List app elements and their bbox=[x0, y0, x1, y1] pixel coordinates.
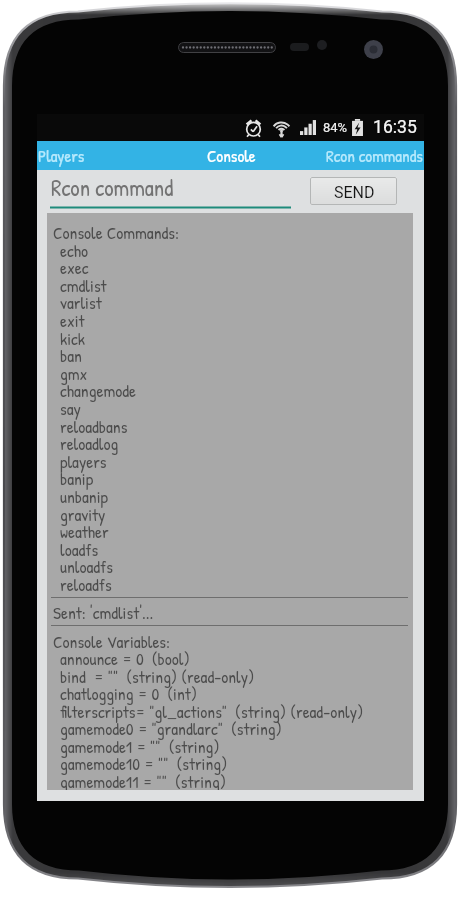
staticText: Rcon commands bbox=[326, 144, 423, 167]
staticText: Console Commands: bbox=[53, 221, 180, 245]
button[interactable]: Console bbox=[207, 141, 267, 170]
staticText: exec bbox=[60, 256, 89, 280]
staticText: Console Variables: bbox=[53, 630, 171, 654]
staticText: ban bbox=[60, 344, 82, 368]
staticText: gmx bbox=[60, 362, 88, 386]
staticText: gamemode1 = "" (string) bbox=[60, 735, 220, 759]
staticText: varlist bbox=[60, 291, 102, 315]
staticText: gamemode11 = "" (string) bbox=[60, 770, 226, 790]
staticText: announce = 0 (bool) bbox=[60, 647, 190, 671]
staticText: Players bbox=[38, 144, 85, 167]
staticText: reloadlog bbox=[60, 432, 119, 456]
staticText: cmdlist bbox=[60, 274, 107, 298]
staticText: echo bbox=[60, 239, 88, 263]
staticText: filterscripts= "gl_actions" (string) (re… bbox=[60, 700, 364, 724]
staticText: SEND bbox=[334, 183, 375, 202]
button[interactable]: Players bbox=[38, 141, 96, 170]
staticText: kick bbox=[60, 327, 86, 351]
staticText: bind = "" (string) (read-only) bbox=[60, 665, 255, 689]
staticText: unloadfs bbox=[60, 555, 113, 579]
staticText: gamemode10 = "" (string) bbox=[60, 752, 228, 776]
staticText: exit bbox=[60, 309, 85, 333]
button[interactable]: SEND bbox=[310, 177, 397, 205]
staticText: Rcon command bbox=[51, 172, 174, 203]
staticText: banip bbox=[60, 467, 94, 491]
staticText: unbanip bbox=[60, 485, 108, 509]
button[interactable]: Rcon commands bbox=[326, 141, 424, 170]
staticText: loadfs bbox=[60, 538, 99, 562]
staticText: 16:35 bbox=[373, 117, 417, 138]
staticText: reloadfs bbox=[60, 573, 112, 597]
staticText: gravity bbox=[60, 503, 106, 527]
staticText: gamemode0 = "grandlarc" (string) bbox=[60, 717, 282, 741]
staticText: reloadbans bbox=[60, 415, 128, 439]
staticText: changemode bbox=[60, 379, 136, 403]
staticText: Sent: 'cmdlist'... bbox=[53, 601, 154, 625]
staticText: 84% bbox=[323, 120, 348, 135]
staticText: players bbox=[60, 450, 107, 474]
staticText: Console bbox=[207, 144, 256, 167]
staticText: weather bbox=[60, 520, 109, 544]
staticText: chatlogging = 0 (int) bbox=[60, 682, 198, 706]
staticText: say bbox=[60, 397, 81, 421]
